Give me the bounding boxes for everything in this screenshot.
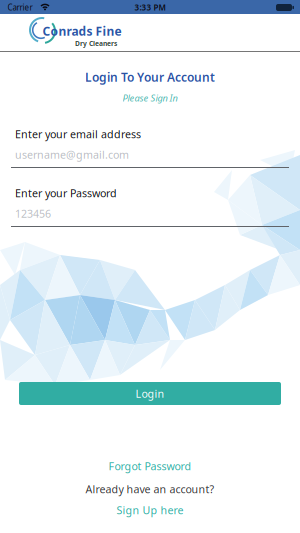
staticText: username@gmail.com <box>15 147 129 162</box>
button[interactable]: Forgot Password <box>108 459 191 473</box>
staticText: Already have an account? <box>85 482 214 496</box>
staticText: Dry Cleaners <box>75 39 117 48</box>
staticText: Please Sign In <box>122 92 177 104</box>
staticText: Sign Up here <box>116 503 183 517</box>
button[interactable]: Enter your Password <box>0 184 300 230</box>
button[interactable]: Login <box>19 382 281 405</box>
staticText: Carrier <box>7 2 32 13</box>
staticText: Conrads Fine <box>42 23 121 39</box>
staticText: Login <box>135 386 164 401</box>
staticText: Enter your email address <box>15 127 141 141</box>
button[interactable]: Enter your email address <box>0 125 300 171</box>
button[interactable]: Sign Up here <box>116 503 183 517</box>
staticText: Forgot Password <box>108 459 191 473</box>
staticText: Login To Your Account <box>85 69 215 85</box>
staticText: 3:33 PM <box>134 2 165 13</box>
staticText: 123456 <box>15 206 51 221</box>
staticText: Enter your Password <box>15 186 117 200</box>
